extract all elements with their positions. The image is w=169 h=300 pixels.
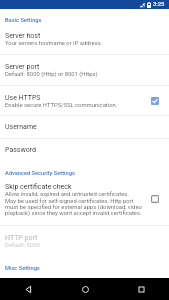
button[interactable]: Skip certificate check xyxy=(0,178,169,225)
staticText: Enable secure HTTPS/SSL communication. xyxy=(5,102,118,109)
staticText: Use HTTPS xyxy=(5,94,41,102)
button[interactable]: Username xyxy=(0,116,169,138)
staticText: Basic Settings xyxy=(5,17,42,24)
button[interactable]: Server port xyxy=(0,55,169,85)
button[interactable]: Recents xyxy=(113,278,169,300)
staticText: Server port xyxy=(5,63,40,71)
button[interactable]: Password xyxy=(0,139,169,161)
staticText: Allow invalid, expired and untrusted cer… xyxy=(5,191,142,216)
staticText: Default: 8000 xyxy=(5,242,40,249)
staticText: Username xyxy=(5,123,37,131)
button[interactable]: Use HTTPS xyxy=(0,86,169,115)
staticText: Password xyxy=(5,146,36,154)
button[interactable]: Home xyxy=(57,278,113,300)
button[interactable]: Back xyxy=(0,278,57,300)
staticText: Advanced Security Settings xyxy=(5,170,75,177)
staticText: Skip certificate check xyxy=(5,183,72,191)
staticText: Default: 8000 (Http) or 8001 (Https) xyxy=(5,71,98,78)
button[interactable]: HTTP port xyxy=(0,226,169,252)
staticText: HTTP port xyxy=(5,234,38,242)
staticText: Your servers hostname or IP address. xyxy=(5,40,103,47)
staticText: Misc Settings xyxy=(5,265,40,272)
button[interactable]: Server host xyxy=(0,24,169,54)
staticText: Server host xyxy=(5,32,41,40)
staticText: 3:25 xyxy=(153,1,165,8)
